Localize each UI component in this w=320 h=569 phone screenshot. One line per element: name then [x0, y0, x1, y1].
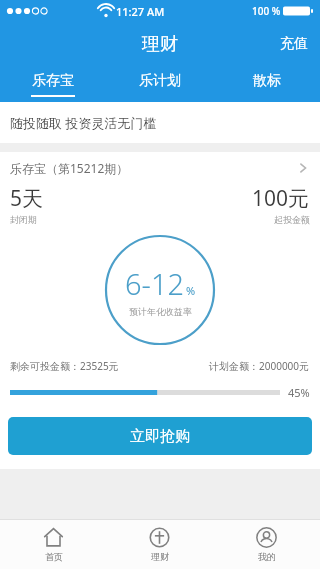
button[interactable]: 散标: [213, 66, 320, 102]
button[interactable]: 乐计划: [106, 66, 213, 102]
staticText: 5天: [10, 184, 44, 213]
staticText: 充值: [280, 35, 308, 53]
staticText: %: [186, 283, 196, 298]
staticText: 立即抢购: [130, 427, 190, 446]
staticText: 乐存宝: [32, 72, 74, 90]
button[interactable]: 乐存宝（第15212期）: [0, 152, 320, 184]
button[interactable]: 充值: [268, 27, 320, 61]
staticText: 乐计划: [139, 72, 181, 90]
button[interactable]: 我的: [213, 520, 320, 569]
staticText: 6-12: [125, 264, 185, 303]
button[interactable]: 乐存宝: [0, 66, 106, 102]
staticText: 起投金额: [274, 214, 310, 225]
staticText: 我的: [258, 551, 276, 562]
staticText: 随投随取 投资灵活无门槛: [10, 114, 157, 132]
staticText: 散标: [253, 72, 281, 90]
staticText: 45%: [288, 385, 310, 400]
staticText: 首页: [45, 551, 63, 562]
staticText: 理财: [142, 33, 178, 56]
staticText: 理财: [151, 551, 169, 562]
button[interactable]: 理财: [106, 520, 213, 569]
staticText: 11:27 AM: [116, 4, 165, 19]
staticText: 100 %: [252, 4, 281, 18]
staticText: 计划金额：2000000元: [209, 359, 310, 373]
staticText: 乐存宝（第15212期）: [10, 160, 129, 176]
button[interactable]: 首页: [0, 520, 106, 569]
staticText: 封闭期: [10, 214, 37, 225]
staticText: 剩余可投金额：23525元: [10, 359, 119, 373]
button[interactable]: 随投随取 投资灵活无门槛: [0, 102, 320, 143]
staticText: 预计年化收益率: [129, 306, 192, 317]
staticText: 100元: [252, 184, 310, 213]
button[interactable]: 立即抢购: [8, 417, 312, 455]
